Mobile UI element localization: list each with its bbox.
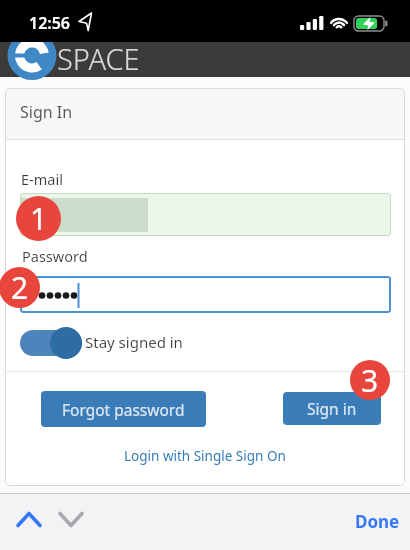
staticText: Password xyxy=(22,246,88,266)
button[interactable] xyxy=(12,506,46,532)
staticText: 12:56 xyxy=(29,12,71,34)
staticText: SPACE xyxy=(57,39,140,78)
staticText: Sign In xyxy=(20,101,73,123)
button[interactable]: Forgot password xyxy=(41,391,206,427)
staticText: 1 xyxy=(30,198,48,239)
staticText: 3 xyxy=(361,360,379,400)
button[interactable] xyxy=(20,330,82,356)
staticText: Done xyxy=(355,510,400,533)
staticText: 2 xyxy=(11,267,29,308)
staticText: Stay signed in xyxy=(85,332,183,352)
button[interactable] xyxy=(20,193,391,236)
staticText: Forgot password xyxy=(62,399,185,420)
button[interactable]: Login with Single Sign On xyxy=(124,447,286,465)
staticText: Sign in xyxy=(307,398,357,419)
button[interactable] xyxy=(54,506,88,532)
staticText: Login with Single Sign On xyxy=(124,447,286,465)
button[interactable]: Done xyxy=(348,508,400,534)
button[interactable]: Sign in xyxy=(283,392,381,425)
button[interactable] xyxy=(20,276,391,313)
staticText: E-mail xyxy=(21,169,63,189)
